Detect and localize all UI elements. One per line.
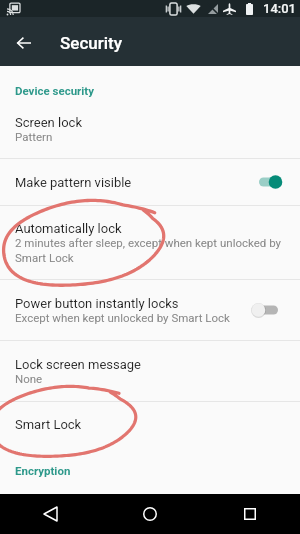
button[interactable]: Smart Lock [0,402,300,447]
staticText: Pattern [15,130,53,143]
staticText: Smart Lock [15,417,82,432]
staticText: Encryption [15,464,71,477]
button[interactable]: Home [100,494,200,534]
button[interactable]: Switch on [255,171,293,193]
button[interactable]: Make pattern visible [0,159,300,205]
button[interactable]: Automatically lock [0,206,300,279]
staticText: Security [60,33,123,53]
staticText: Lock screen message [15,357,142,372]
staticText: Device security [15,84,95,97]
button[interactable]: Screen lock [0,97,300,158]
staticText: Power button instantly locks [15,296,179,311]
staticText: Automatically lock [15,221,122,236]
button[interactable]: Power button instantly locks [0,280,300,340]
staticText: 2 minutes after sleep, except when kept … [15,236,293,265]
button[interactable]: Back [0,494,100,534]
staticText: None [15,372,43,385]
staticText: Make pattern visible [15,175,132,190]
button[interactable]: Navigate up [0,17,46,66]
staticText: Except when kept unlocked by Smart Lock [15,311,230,324]
staticText: 14:01 [263,1,296,16]
staticText: Screen lock [15,115,82,130]
button[interactable]: Switch off [255,299,293,321]
button[interactable]: Lock screen message [0,341,300,401]
button[interactable]: Recent apps [200,494,300,534]
